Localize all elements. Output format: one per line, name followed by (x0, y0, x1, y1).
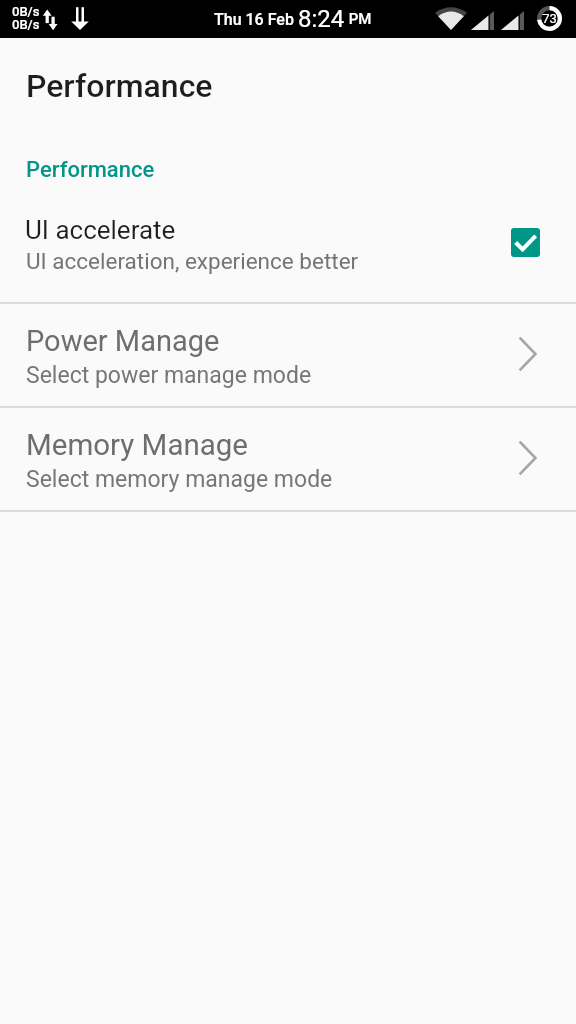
staticText: Performance (26, 67, 213, 105)
button[interactable]: UI accelerate (0, 192, 576, 302)
staticText: UI accelerate (25, 215, 176, 245)
button[interactable]: UI accelerate checkbox (511, 228, 540, 257)
button[interactable]: Memory Manage (0, 407, 576, 510)
staticText: Power Manage (26, 324, 220, 358)
staticText: 0B/s (12, 4, 40, 19)
staticText: 73 (542, 11, 557, 26)
staticText: Select memory manage mode (26, 466, 333, 493)
staticText: 0B/s (12, 17, 40, 32)
other: Open (519, 337, 537, 371)
staticText: Select power manage mode (26, 362, 312, 389)
staticText: Thu 16 Feb (214, 10, 298, 29)
staticText: Memory Manage (26, 428, 248, 463)
staticText: Performance (26, 157, 155, 183)
button[interactable]: Power Manage (0, 303, 576, 406)
staticText: PM (345, 10, 372, 28)
staticText: 8:24 (298, 5, 345, 33)
staticText: UI acceleration, experience better (26, 248, 359, 274)
other: Open (519, 441, 537, 475)
